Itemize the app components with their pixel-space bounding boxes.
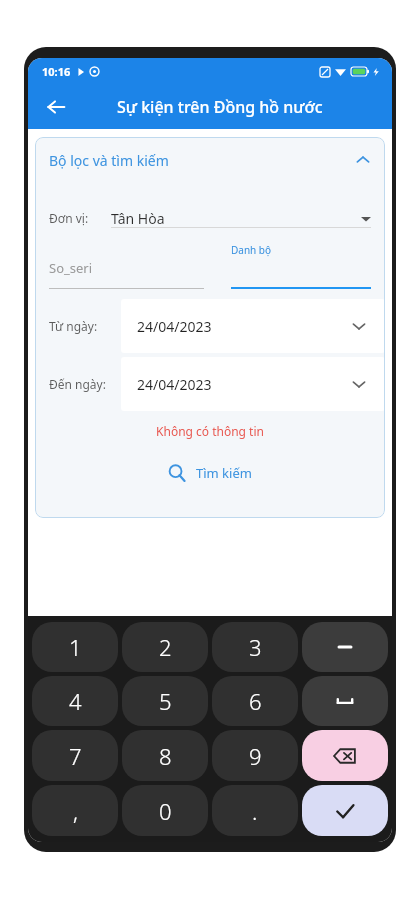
staticText: Không có thông tin (35, 423, 385, 439)
button[interactable]: 24/04/2023 (121, 299, 385, 353)
staticText: 9 (249, 741, 262, 771)
staticText: Đến ngày: (49, 376, 106, 392)
button[interactable]: 24/04/2023 (121, 357, 385, 411)
staticText: 6 (249, 686, 262, 716)
staticText: 2 (159, 632, 172, 662)
staticText: Bộ lọc và tìm kiếm (49, 151, 169, 170)
staticText: . (252, 796, 258, 826)
button[interactable]: 2 (122, 622, 208, 672)
button[interactable]: 3 (212, 622, 298, 672)
staticText: 1 (69, 632, 82, 662)
button[interactable]: 8 (122, 730, 208, 781)
staticText: Danh bộ (231, 243, 272, 257)
staticText: Tìm kiếm (196, 464, 252, 482)
button[interactable]: So_seri (49, 241, 216, 289)
staticText: Đơn vị: (49, 210, 89, 226)
button[interactable]: 0 (122, 785, 208, 836)
button[interactable]: Tìm kiếm (35, 453, 385, 493)
staticText: Tân Hòa (111, 209, 165, 228)
button[interactable]: Minus (302, 622, 388, 672)
button[interactable]: Space (302, 676, 388, 726)
staticText: 24/04/2023 (137, 375, 212, 394)
staticText: , (73, 796, 78, 826)
button[interactable]: Back (36, 87, 76, 127)
button[interactable]: , (32, 785, 118, 836)
staticText: 8 (159, 741, 172, 771)
button[interactable]: 1 (32, 622, 118, 672)
staticText: Từ ngày: (49, 318, 98, 334)
button[interactable]: Delete (302, 730, 388, 781)
staticText: 4 (69, 686, 82, 716)
staticText: 10:16 (42, 64, 71, 79)
button[interactable]: Đơn vị: (35, 199, 385, 237)
button[interactable]: Danh bộ (231, 241, 371, 289)
button[interactable]: 5 (122, 676, 208, 726)
staticText: 0 (159, 796, 172, 826)
staticText: 3 (249, 632, 262, 662)
staticText: 7 (69, 741, 82, 771)
button[interactable]: 9 (212, 730, 298, 781)
staticText: 24/04/2023 (137, 317, 212, 336)
staticText: 5 (159, 686, 172, 716)
button[interactable]: Enter (302, 785, 388, 836)
staticText: Sự kiện trên Đồng hồ nước (117, 96, 323, 118)
button[interactable]: 6 (212, 676, 298, 726)
button[interactable]: Bộ lọc và tìm kiếm (35, 137, 385, 183)
button[interactable]: 4 (32, 676, 118, 726)
button[interactable]: 7 (32, 730, 118, 781)
staticText: So_seri (49, 259, 93, 277)
button[interactable]: . (212, 785, 298, 836)
